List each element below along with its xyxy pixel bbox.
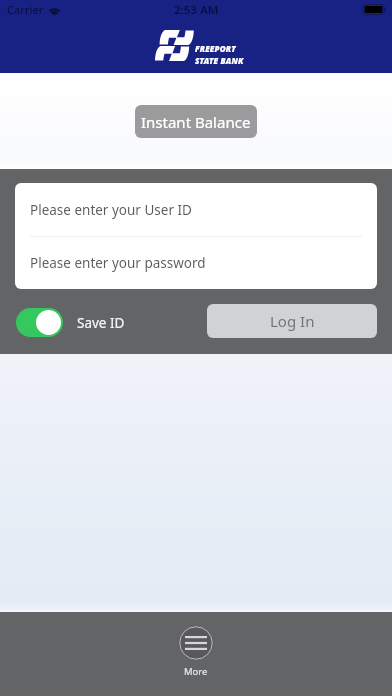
button[interactable]: Save ID — [16, 308, 63, 337]
button[interactable]: Please enter your User ID — [15, 183, 377, 236]
button[interactable]: More — [179, 626, 213, 678]
button[interactable]: Please enter your password — [15, 237, 377, 289]
button[interactable]: Instant Balance — [135, 105, 257, 138]
staticText: More — [184, 665, 208, 678]
staticText: Please enter your User ID — [30, 201, 192, 219]
staticText: Save ID — [77, 314, 125, 332]
staticText: Log In — [270, 311, 315, 331]
button[interactable]: Log In — [207, 304, 377, 338]
staticText: Please enter your password — [30, 254, 206, 272]
staticText: Carrier — [7, 2, 44, 17]
staticText: 2:53 AM — [174, 2, 219, 18]
staticText: Instant Balance — [141, 112, 251, 132]
staticText: FREEPORT — [195, 43, 236, 54]
staticText: STATE BANK — [195, 55, 244, 66]
